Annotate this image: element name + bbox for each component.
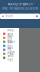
staticText: Cafes (7, 40, 14, 43)
staticText: Restaurants (7, 28, 14, 39)
staticText: Search (5, 14, 13, 18)
staticText: Museums (7, 46, 14, 53)
button[interactable]: Cafes (0, 40, 19, 44)
button[interactable]: Settings (0, 56, 19, 60)
button[interactable]: Restaurants (0, 32, 19, 36)
staticText: CATEGORIES (3, 29, 12, 31)
button[interactable]: Museums (0, 48, 19, 52)
staticText: Hotels (7, 34, 13, 41)
staticText: FIND THE NEAREST LOCATION (2, 7, 38, 10)
button[interactable]: Parks (0, 52, 19, 56)
staticText: Shopping (7, 40, 13, 51)
staticText: Parks (7, 52, 13, 55)
button[interactable]: Hotels (0, 36, 19, 40)
staticText: Settings (7, 54, 14, 61)
button[interactable]: Shopping (0, 44, 19, 48)
staticText: MODULE OF SEARCH (7, 2, 32, 6)
